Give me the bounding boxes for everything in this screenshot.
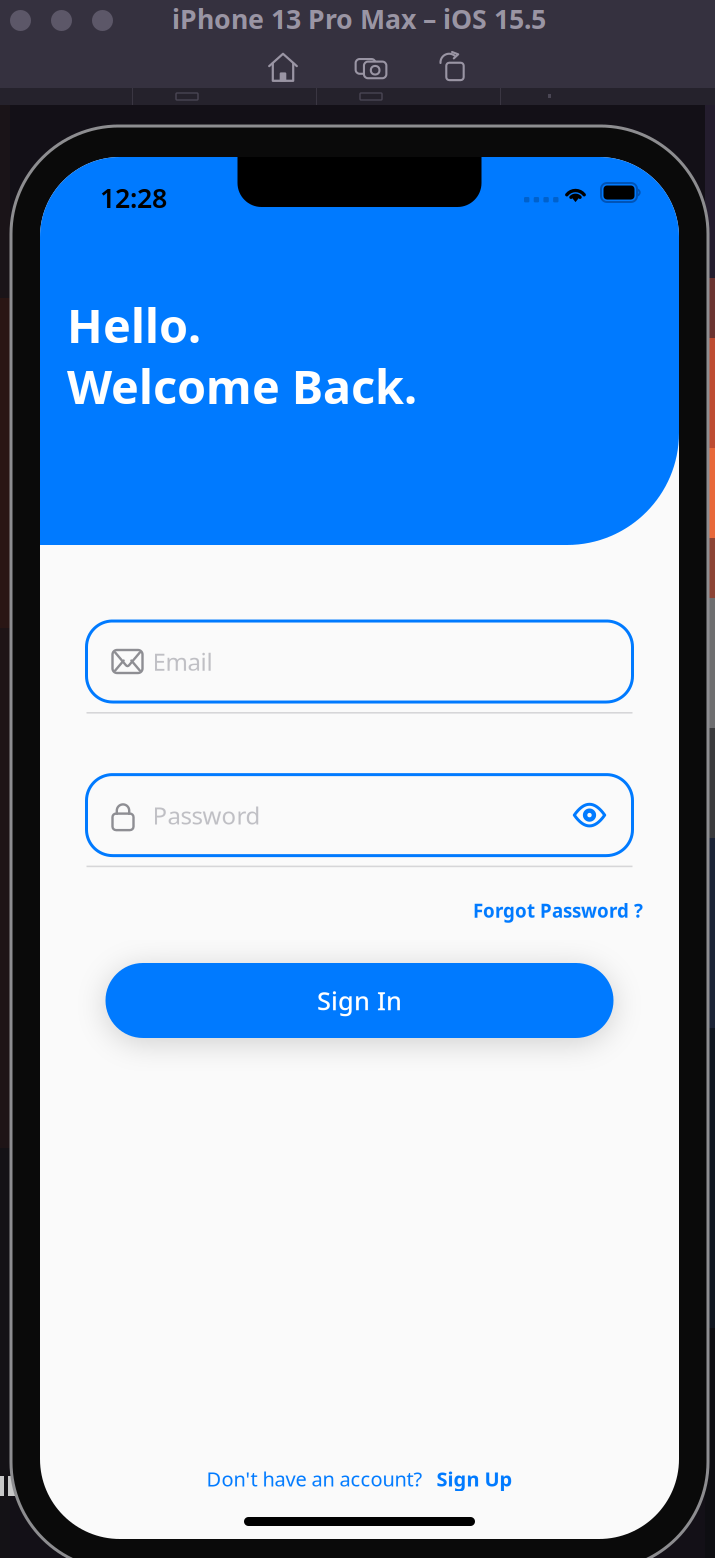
staticText: Hello. [67,294,201,356]
button[interactable]: Forgot Password ? [473,894,643,927]
button[interactable]: Rotate [437,52,466,81]
button[interactable]: Sign Up [422,1462,512,1495]
staticText: Sign Up [436,1465,512,1492]
staticText: Welcome Back. [67,355,417,417]
staticText: 12:28 [100,180,167,215]
staticText: Email [152,646,212,677]
staticText: Forgot Password ? [473,898,643,923]
staticText: Password [152,799,260,831]
button[interactable]: Sign In [105,963,613,1038]
staticText: iPhone 13 Pro Max – iOS 15.5 [172,1,546,36]
button[interactable]: Show password [558,775,620,856]
button[interactable]: Screenshot [355,52,387,84]
staticText: Don't have an account? [206,1465,422,1492]
staticText: Sign In [317,984,402,1017]
button[interactable]: Home [268,52,298,82]
